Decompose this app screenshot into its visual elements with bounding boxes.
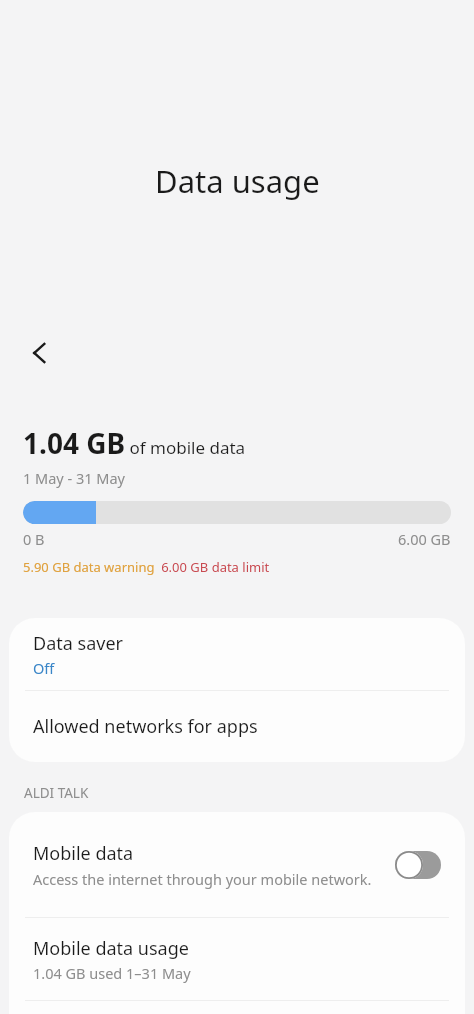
staticText: 1.04 GB used 1–31 May bbox=[33, 963, 191, 983]
button[interactable]: Allowed networks for apps bbox=[9, 691, 465, 762]
staticText: 6.00 GB bbox=[398, 529, 451, 549]
staticText: ALDI TALK bbox=[24, 784, 89, 802]
staticText: Allowed networks for apps bbox=[33, 714, 258, 739]
button[interactable]: Mobile data bbox=[391, 847, 445, 883]
staticText: 5.90 GB data warning 6.00 GB data limit bbox=[23, 558, 270, 576]
staticText: Access the internet through your mobile … bbox=[33, 869, 372, 889]
staticText: 1.04 GB of mobile data bbox=[23, 424, 246, 462]
button[interactable]: Data saver bbox=[9, 618, 465, 690]
button[interactable]: Mobile data bbox=[9, 812, 465, 917]
staticText: Mobile data bbox=[33, 841, 134, 866]
staticText: 0 B bbox=[23, 529, 45, 549]
staticText: Data saver bbox=[33, 631, 123, 656]
staticText: Mobile data usage bbox=[33, 936, 189, 961]
staticText: Data usage bbox=[155, 160, 320, 202]
button[interactable]: Mobile data usage bbox=[9, 918, 465, 1000]
button[interactable]: Back bbox=[12, 325, 68, 381]
staticText: 1 May - 31 May bbox=[23, 468, 125, 488]
staticText: Off bbox=[33, 658, 55, 678]
